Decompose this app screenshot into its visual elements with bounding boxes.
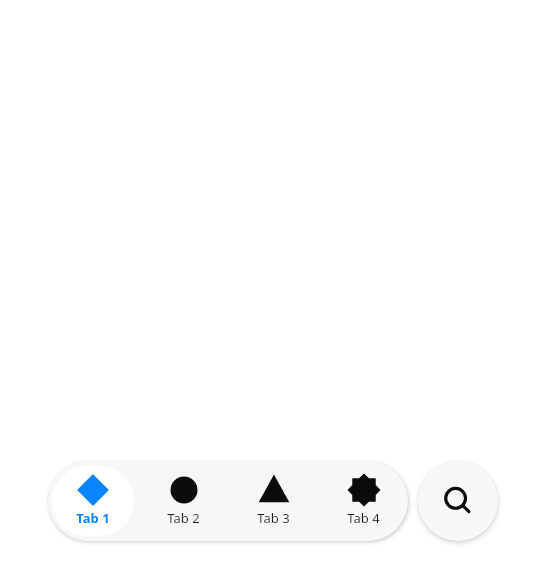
staticText: Tab 3	[257, 509, 290, 527]
button[interactable]: Tab 1	[52, 466, 134, 536]
staticText: Tab 2	[167, 509, 200, 527]
staticText: Tab 4	[347, 509, 380, 527]
button[interactable]: Tab 3	[232, 466, 314, 536]
button[interactable]: Tab 4	[322, 466, 404, 536]
button[interactable]: Search	[418, 461, 498, 541]
staticText: Tab 1	[76, 509, 110, 527]
button[interactable]: Tab 2	[142, 466, 224, 536]
